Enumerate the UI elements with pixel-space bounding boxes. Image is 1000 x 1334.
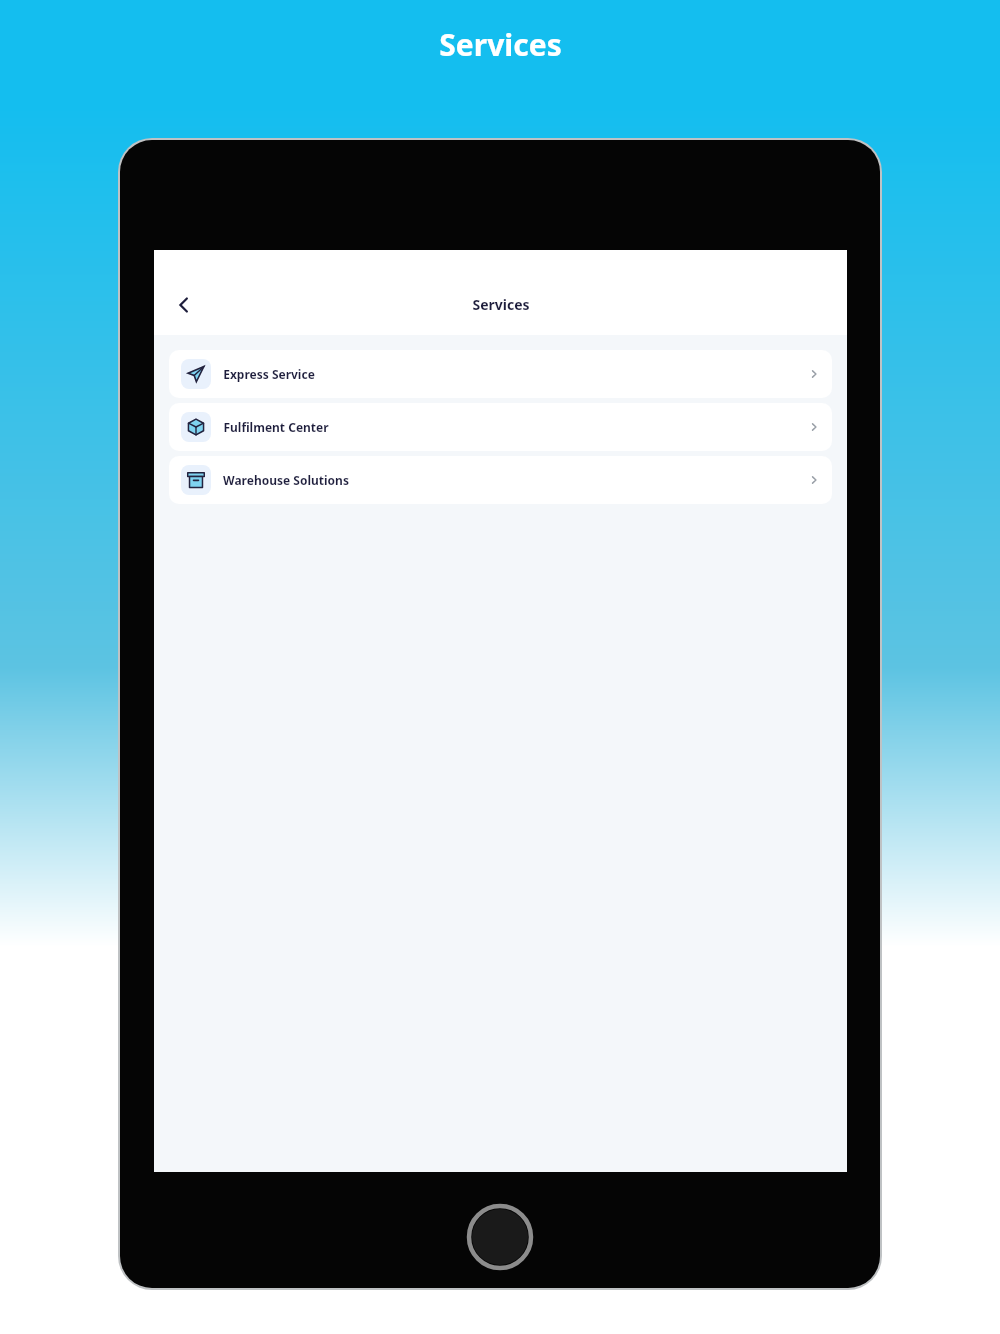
staticText: Warehouse Solutions [223,472,349,488]
button[interactable]: Back [164,285,204,325]
staticText: Services [439,24,562,65]
button[interactable]: Home [467,1204,533,1270]
button[interactable]: Express Service [169,350,832,398]
staticText: Fulfilment Center [223,419,329,435]
staticText: Services [472,295,530,314]
staticText: Express Service [223,366,315,382]
button[interactable]: Fulfilment Center [169,403,832,451]
button[interactable]: Warehouse Solutions [169,456,832,504]
